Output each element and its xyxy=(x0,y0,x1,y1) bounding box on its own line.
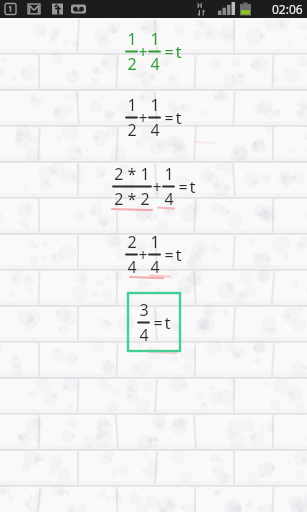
staticText: = xyxy=(164,107,174,129)
staticText: = xyxy=(164,244,174,266)
staticText: + xyxy=(152,176,162,198)
staticText: t xyxy=(189,175,196,198)
button[interactable]: Result 3 over 4 equals t xyxy=(128,293,180,351)
staticText: 1 xyxy=(150,231,160,253)
staticText: 2 xyxy=(127,231,137,253)
staticText: 2 * 2 xyxy=(114,188,150,210)
button[interactable]: 1 xyxy=(125,94,182,141)
staticText: = xyxy=(164,41,174,63)
button[interactable]: 2 xyxy=(125,231,182,278)
staticText: + xyxy=(138,244,148,266)
staticText: 02:06 xyxy=(272,1,303,17)
staticText: 4 xyxy=(150,256,160,278)
staticText: 2 xyxy=(127,53,137,75)
staticText: 4 xyxy=(150,119,160,141)
staticText: t xyxy=(175,243,182,266)
button[interactable]: 2 * 1 xyxy=(112,163,196,210)
staticText: 1 xyxy=(127,94,137,116)
staticText: t xyxy=(175,106,182,129)
staticText: 4 xyxy=(150,53,160,75)
staticText: = xyxy=(153,312,163,334)
staticText: t xyxy=(175,40,182,63)
staticText: 1 xyxy=(164,163,174,185)
staticText: 1 xyxy=(150,94,160,116)
staticText: H xyxy=(197,1,203,11)
staticText: 4 xyxy=(164,188,174,210)
staticText: 4 xyxy=(127,256,137,278)
staticText: = xyxy=(178,176,188,198)
staticText: 3 xyxy=(139,299,149,321)
staticText: + xyxy=(138,107,148,129)
staticText: t xyxy=(164,311,171,334)
staticText: 1 xyxy=(127,28,137,50)
staticText: 1 xyxy=(150,28,160,50)
staticText: 2 xyxy=(127,119,137,141)
staticText: 4 xyxy=(139,324,149,346)
staticText: + xyxy=(138,41,148,63)
staticText: 2 * 1 xyxy=(114,163,150,185)
button[interactable]: 1 xyxy=(125,28,182,75)
